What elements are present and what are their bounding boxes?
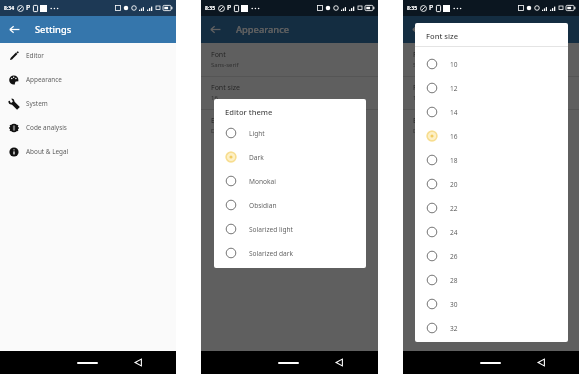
staticText: Editor theme <box>211 116 254 126</box>
staticText: P <box>227 3 232 13</box>
staticText: 8:35 <box>407 5 417 12</box>
button[interactable]: 22 <box>415 196 568 220</box>
button[interactable]: System <box>0 91 176 115</box>
button[interactable]: 30 <box>415 292 568 316</box>
staticText: Sans-serif <box>211 61 239 69</box>
staticText: Dark <box>249 153 264 162</box>
staticText: P <box>26 3 31 13</box>
button[interactable]: Solarized dark <box>214 241 366 265</box>
staticText: Appearance <box>26 75 62 84</box>
staticText: 24 <box>450 228 458 237</box>
staticText: P <box>429 3 434 13</box>
button[interactable]: Home <box>278 362 299 364</box>
staticText: System <box>26 99 48 108</box>
button[interactable]: Editor <box>0 43 176 67</box>
button[interactable]: 28 <box>415 268 568 292</box>
staticText: 12 <box>450 84 458 93</box>
staticText: Obsidian <box>249 201 277 210</box>
button[interactable]: Back <box>335 358 344 367</box>
staticText: Code analysis <box>26 123 67 132</box>
button[interactable]: 10 <box>415 52 568 76</box>
staticText: Dark <box>413 127 427 135</box>
staticText: 22 <box>450 204 458 213</box>
staticText: Monokai <box>249 177 276 186</box>
staticText: 8:34 <box>4 5 14 12</box>
staticText: About & Legal <box>26 147 69 156</box>
button[interactable]: Editor theme <box>403 110 579 142</box>
staticText: 8:35 <box>205 5 215 12</box>
staticText: Solarized dark <box>249 249 294 258</box>
staticText: Editor theme <box>413 116 456 126</box>
staticText: Settings <box>35 23 72 36</box>
button[interactable]: 16 <box>415 124 568 148</box>
staticText: 14 <box>450 108 458 117</box>
button[interactable]: 20 <box>415 172 568 196</box>
staticText: Light <box>249 129 265 138</box>
staticText: Appearance <box>236 23 290 36</box>
button[interactable]: 18 <box>415 148 568 172</box>
staticText: Font size <box>426 31 459 41</box>
button[interactable]: Code analysis <box>0 115 176 139</box>
button[interactable]: Editor theme <box>201 110 378 142</box>
staticText: Font size <box>211 83 240 93</box>
button[interactable]: Solarized light <box>214 217 366 241</box>
button[interactable]: About & Legal <box>0 139 176 163</box>
button[interactable]: Home <box>77 362 98 364</box>
staticText: 20 <box>450 180 458 189</box>
staticText: Appearance <box>438 23 492 36</box>
button[interactable]: Dark <box>214 145 366 169</box>
button[interactable]: 14 <box>415 100 568 124</box>
button[interactable]: Back <box>210 24 221 35</box>
staticText: Editor <box>26 51 44 60</box>
staticText: Solarized light <box>249 225 293 234</box>
staticText: 28 <box>450 276 458 285</box>
staticText: 32 <box>450 324 458 333</box>
staticText: 16 <box>211 94 218 102</box>
staticText: Font <box>211 50 226 60</box>
button[interactable]: Back <box>537 358 546 367</box>
staticText: Font <box>413 50 428 60</box>
button[interactable]: Obsidian <box>214 193 366 217</box>
button[interactable]: Home <box>480 362 501 364</box>
staticText: Font size <box>413 83 442 93</box>
button[interactable]: 24 <box>415 220 568 244</box>
staticText: 30 <box>450 300 458 309</box>
button[interactable]: Font size <box>201 77 378 109</box>
button[interactable]: Monokai <box>214 169 366 193</box>
button[interactable]: 26 <box>415 244 568 268</box>
button[interactable]: Light <box>214 121 366 145</box>
button[interactable]: Appearance <box>0 67 176 91</box>
button[interactable]: Back <box>134 358 143 367</box>
button[interactable]: Back <box>9 24 20 35</box>
staticText: 10 <box>450 60 458 69</box>
staticText: 18 <box>450 156 458 165</box>
button[interactable]: Font size <box>403 77 579 109</box>
staticText: Dark <box>211 127 225 135</box>
button[interactable]: Font <box>201 44 378 76</box>
button[interactable]: Font <box>403 44 579 76</box>
button[interactable]: 12 <box>415 76 568 100</box>
staticText: Sans-serif <box>413 61 441 69</box>
staticText: 16 <box>413 94 420 102</box>
staticText: Editor theme <box>225 107 273 117</box>
button[interactable]: Back <box>412 24 423 35</box>
staticText: 16 <box>450 132 458 141</box>
staticText: 26 <box>450 252 458 261</box>
button[interactable]: 32 <box>415 316 568 340</box>
